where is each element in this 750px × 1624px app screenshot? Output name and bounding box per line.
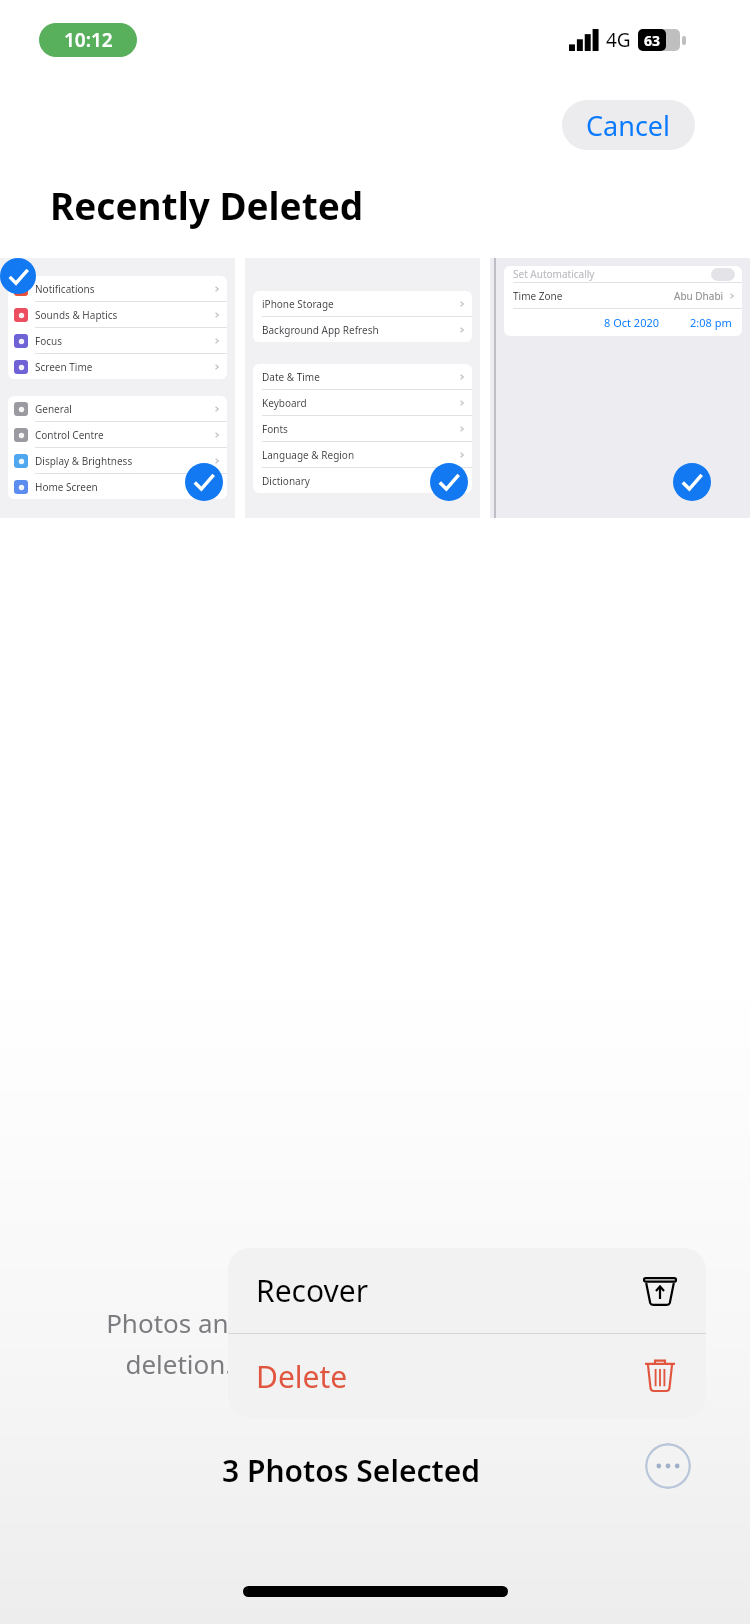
- staticText: Background App Refresh: [262, 323, 379, 337]
- staticText: Date & Time: [262, 370, 320, 384]
- button[interactable]: iPhone Storage: [245, 258, 480, 518]
- staticText: Photos and videos are kept for 30 days a…: [106, 1305, 644, 1340]
- staticText: Control Centre: [35, 428, 104, 442]
- button[interactable]: More options: [645, 1443, 691, 1489]
- staticText: 4G: [606, 27, 631, 53]
- button[interactable]: Set Automatically: [490, 258, 750, 518]
- staticText: Display & Brightness: [35, 454, 133, 468]
- staticText: Abu Dhabi: [674, 289, 724, 303]
- staticText: iPhone Storage: [262, 297, 334, 311]
- staticText: Cancel: [586, 107, 671, 144]
- button[interactable]: Recover: [228, 1248, 706, 1333]
- staticText: Home Screen: [35, 480, 98, 494]
- staticText: Keyboard: [262, 396, 307, 410]
- staticText: Time Zone: [513, 289, 563, 303]
- button[interactable]: Notifications: [0, 258, 235, 518]
- button[interactable]: Delete: [228, 1334, 706, 1418]
- staticText: deletion. After that they are permanentl…: [125, 1346, 625, 1381]
- staticText: Delete: [256, 1356, 348, 1397]
- staticText: Sounds & Haptics: [35, 308, 118, 322]
- staticText: 2:08 pm: [690, 315, 732, 330]
- staticText: Notifications: [35, 282, 95, 296]
- staticText: 63: [644, 31, 661, 50]
- staticText: 10:12: [64, 27, 113, 53]
- button[interactable]: Cancel: [562, 100, 695, 150]
- staticText: Recover: [256, 1270, 369, 1311]
- staticText: Set Automatically: [513, 267, 595, 281]
- staticText: Language & Region: [262, 448, 355, 462]
- staticText: Fonts: [262, 422, 288, 436]
- staticText: General: [35, 402, 72, 416]
- staticText: Dictionary: [262, 474, 310, 488]
- staticText: Recently Deleted: [50, 180, 364, 230]
- staticText: 3 Photos Selected: [222, 1450, 480, 1491]
- staticText: 8 Oct 2020: [604, 315, 660, 330]
- staticText: Focus: [35, 334, 63, 348]
- staticText: Screen Time: [35, 360, 93, 374]
